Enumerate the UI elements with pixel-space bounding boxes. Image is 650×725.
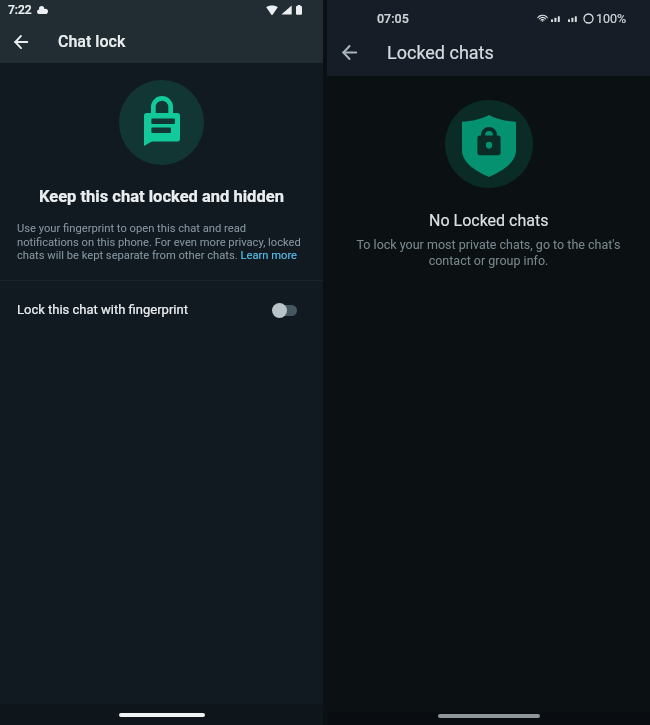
staticText: Chat lock	[58, 32, 126, 51]
staticText: 07:05	[377, 11, 409, 26]
staticText: Locked chats	[387, 42, 494, 63]
staticText: 7:22	[8, 3, 32, 17]
button[interactable]: Back	[328, 31, 370, 73]
staticText: Keep this chat locked and hidden	[39, 187, 284, 206]
button[interactable]: Lock this chat with fingerprint	[0, 281, 323, 336]
button[interactable]: Back	[0, 21, 42, 63]
staticText: Lock this chat with fingerprint	[17, 302, 188, 317]
staticText: 100%	[596, 11, 627, 26]
staticText: To lock your most private chats, go to t…	[341, 237, 636, 268]
staticText: Use your fingerprint to open this chat a…	[17, 222, 301, 261]
staticText: No Locked chats	[429, 211, 549, 230]
